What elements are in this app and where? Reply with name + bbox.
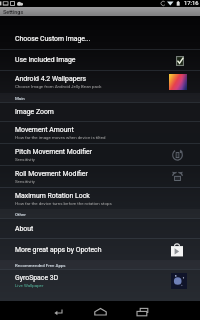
staticText: Settings <box>3 9 24 15</box>
button[interactable]: Use Included Image checkbox <box>172 55 187 66</box>
staticText: Image Zoom <box>15 108 54 116</box>
button[interactable]: Choose Custom Image... <box>0 29 200 49</box>
button[interactable]: Pitch Movement Modifier <box>0 144 200 165</box>
staticText: 17:16 <box>184 0 199 7</box>
staticText: Sensitivity <box>15 179 35 184</box>
staticText: Recommended Free Apps <box>15 263 66 268</box>
button[interactable]: About <box>0 219 200 238</box>
staticText: Roll Movement Modifier <box>15 170 88 178</box>
button[interactable]: Recent apps <box>136 301 200 320</box>
button[interactable]: Image Zoom <box>0 103 200 121</box>
button[interactable]: Android 4.2 Wallpapers <box>0 71 200 93</box>
staticText: Maximum Rotation Lock <box>15 192 90 200</box>
staticText: Sensitivity <box>15 157 35 162</box>
button[interactable]: Open Play Store <box>171 243 187 257</box>
staticText: How far the image moves when device is t… <box>15 135 106 140</box>
button[interactable] <box>171 273 187 289</box>
button[interactable]: More great apps by Opotech <box>0 239 200 260</box>
staticText: More great apps by Opotech <box>15 246 102 254</box>
staticText: Main <box>15 96 25 101</box>
button[interactable]: Maximum Rotation Lock <box>0 188 200 209</box>
staticText: Choose Image from Android Jelly Bean pac… <box>15 84 102 89</box>
button[interactable]: Back <box>0 301 65 320</box>
staticText: GyroSpace 3D <box>15 274 59 282</box>
button[interactable]: Pitch sensitivity <box>172 148 187 162</box>
button[interactable]: Movement Amount <box>0 122 200 143</box>
staticText: Other <box>15 212 26 217</box>
staticText: Movement Amount <box>15 126 74 134</box>
staticText: Choose Custom Image... <box>15 35 91 43</box>
staticText: About <box>15 225 34 233</box>
staticText: Android 4.2 Wallpapers <box>15 75 87 83</box>
staticText: Live Wallpaper <box>15 283 44 288</box>
button[interactable]: Home <box>65 301 136 320</box>
button[interactable]: GyroSpace 3D <box>0 270 200 292</box>
button[interactable]: Roll Movement Modifier <box>0 166 200 187</box>
button[interactable]: Use Included Image <box>0 50 200 70</box>
button[interactable]: Roll sensitivity <box>172 170 187 184</box>
staticText: Pitch Movement Modifier <box>15 148 93 156</box>
staticText: How far the device turns before the rota… <box>15 201 112 206</box>
button[interactable] <box>169 74 187 90</box>
staticText: Use Included Image <box>15 56 76 64</box>
